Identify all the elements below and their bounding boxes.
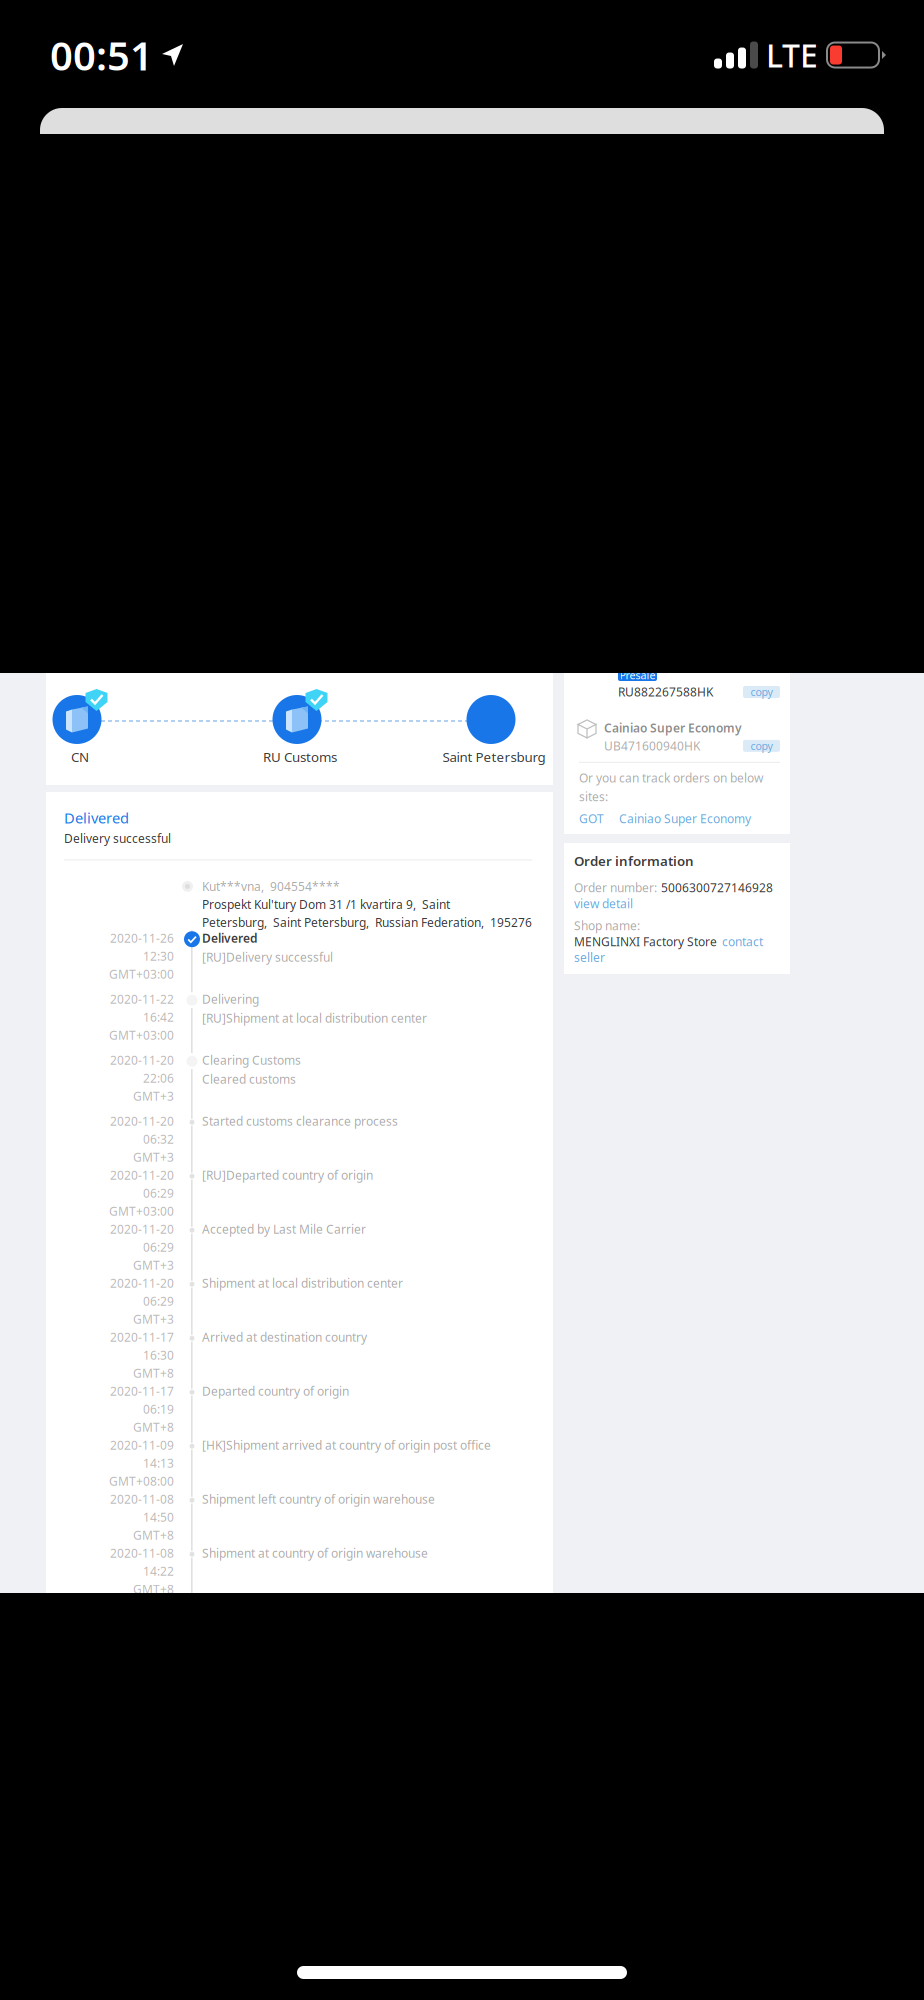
staticText: 00:51	[50, 28, 153, 81]
staticText: Shipment at country of origin warehouse	[202, 1545, 428, 1561]
staticText: LTE	[766, 34, 818, 76]
staticText: Cainiao Super Economy	[619, 811, 751, 827]
staticText: copy	[750, 685, 772, 699]
staticText: 2020-11-17	[110, 1383, 174, 1399]
staticText: GMT+03:00	[109, 1203, 174, 1219]
staticText: Cleared customs	[202, 1071, 296, 1087]
staticText: Order number:	[574, 880, 657, 896]
staticText: 2020-11-08	[110, 1491, 174, 1507]
staticText: Shipment at local distribution center	[202, 1275, 403, 1291]
staticText: Shipment left country of origin warehous…	[202, 1491, 435, 1507]
staticText: RU882267588HK	[618, 684, 713, 700]
staticText: 2020-11-20	[110, 1113, 174, 1129]
staticText: 06:32	[143, 1131, 174, 1147]
staticText: 06:29	[143, 1239, 174, 1255]
staticText: 2020-11-09	[110, 1437, 174, 1453]
staticText: GMT+8	[133, 1419, 174, 1435]
staticText: Started customs clearance process	[202, 1113, 398, 1129]
staticText: Order information	[574, 852, 694, 870]
staticText: Delivery successful	[64, 830, 171, 846]
staticText: RU Customs	[263, 748, 337, 766]
button[interactable]: seller	[574, 949, 605, 965]
staticText: 12:30	[143, 948, 174, 964]
staticText: GMT+3	[133, 1257, 174, 1273]
staticText: 16:42	[143, 1009, 174, 1025]
staticText: [RU]Departed country of origin	[202, 1167, 373, 1183]
staticText: Cainiao Super Economy	[604, 720, 742, 736]
staticText: 2020-11-08	[110, 1545, 174, 1561]
button[interactable]: Cainiao Super Economy	[619, 811, 751, 827]
staticText: view detail	[574, 896, 633, 911]
staticText: 06:29	[143, 1185, 174, 1201]
staticText: Delivering	[202, 991, 259, 1007]
staticText: 14:50	[143, 1509, 174, 1525]
staticText: GMT+08:00	[109, 1473, 174, 1489]
staticText: [RU]Delivery successful	[202, 949, 333, 965]
staticText: 2020-11-20	[110, 1275, 174, 1291]
staticText: Shop name:	[574, 918, 640, 933]
staticText: GMT+3	[133, 1088, 174, 1104]
staticText: GMT+03:00	[109, 1027, 174, 1043]
staticText: GMT+8	[133, 1365, 174, 1381]
button[interactable]: copy	[743, 740, 780, 752]
staticText: 2020-11-17	[110, 1329, 174, 1345]
staticText: GMT+8	[133, 1581, 174, 1597]
staticText: Petersburg, Saint Petersburg, Russian Fe…	[202, 914, 532, 930]
staticText: Prospekt Kul'tury Dom 31 /1 kvartira 9, …	[202, 896, 450, 912]
staticText: 2020-11-22	[110, 991, 174, 1007]
staticText: copy	[750, 739, 772, 753]
staticText: 2020-11-26	[110, 930, 174, 946]
button[interactable]: GOT	[579, 811, 604, 827]
staticText: GMT+3	[133, 1311, 174, 1327]
staticText: Presale	[619, 668, 655, 682]
staticText: 2020-11-20	[110, 1221, 174, 1237]
staticText: UB471600940HK	[604, 738, 700, 754]
staticText: Departed country of origin	[202, 1383, 349, 1399]
staticText: GMT+8	[133, 1527, 174, 1543]
staticText: 06:29	[143, 1293, 174, 1309]
staticText: Kut***vna, 904554****	[202, 878, 340, 894]
staticText: contact	[722, 933, 763, 949]
staticText: sites:	[579, 789, 608, 805]
staticText: Arrived at destination country	[202, 1329, 367, 1345]
staticText: Saint Petersburg	[442, 748, 545, 766]
staticText: MENGLINXI Factory Store	[574, 933, 717, 949]
staticText: [RU]Shipment at local distribution cente…	[202, 1010, 427, 1026]
staticText: 14:22	[143, 1563, 174, 1579]
staticText: GMT+03:00	[109, 966, 174, 982]
staticText: 16:30	[143, 1347, 174, 1363]
staticText: seller	[574, 949, 605, 965]
staticText: 5006300727146928	[661, 880, 773, 896]
staticText: CN	[71, 748, 89, 766]
staticText: Delivered	[202, 930, 258, 946]
staticText: Or you can track orders on below	[579, 770, 763, 786]
staticText: GOT	[579, 811, 604, 827]
button[interactable]: view detail	[574, 896, 633, 911]
staticText: Clearing Customs	[202, 1052, 301, 1068]
staticText: 06:19	[143, 1401, 174, 1417]
button[interactable]: copy	[743, 686, 780, 698]
staticText: 2020-11-20	[110, 1052, 174, 1068]
staticText: [HK]Shipment arrived at country of origi…	[202, 1437, 491, 1453]
staticText: Accepted by Last Mile Carrier	[202, 1221, 366, 1237]
staticText: 14:13	[143, 1455, 174, 1471]
staticText: 2020-11-20	[110, 1167, 174, 1183]
staticText: 22:06	[143, 1070, 174, 1086]
staticText: Delivered	[64, 808, 129, 827]
button[interactable]: contact	[722, 933, 763, 949]
staticText: GMT+3	[133, 1149, 174, 1165]
